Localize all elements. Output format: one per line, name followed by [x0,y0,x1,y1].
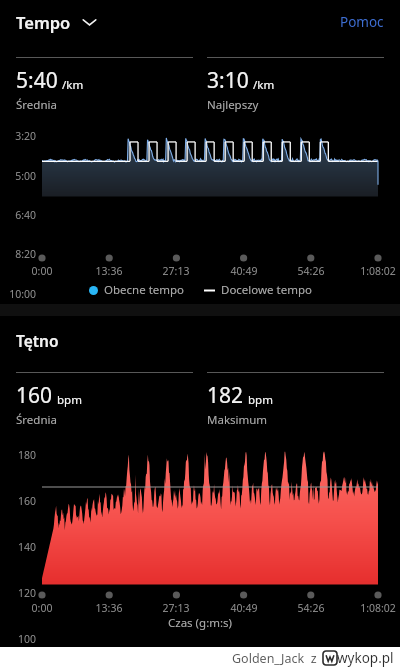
staticText: 1:08:02 [348,601,400,615]
staticText: 10:00 [0,287,36,301]
staticText: 40:49 [214,601,274,615]
staticText: Tętno [16,330,59,351]
button[interactable]: 182 [207,372,384,428]
staticText: 0:00 [12,601,72,615]
staticText: 5:40 [16,66,58,95]
button[interactable]: Pomoc [324,5,400,39]
staticText: 100 [0,632,36,646]
staticText: 3:10 [207,66,249,95]
staticText: Docelowe tempo [221,282,312,298]
staticText: 0:00 [12,264,72,278]
button[interactable]: 160 [16,372,193,428]
staticText: Golden_Jack z [232,650,320,667]
button[interactable]: 3:10 [207,57,384,113]
staticText: Maksimum [207,412,268,428]
staticText: Średnia [16,412,57,428]
staticText: 54:26 [281,601,341,615]
staticText: Pomoc [340,13,384,31]
staticText: 120 [0,586,36,600]
staticText: 6:40 [0,208,36,222]
staticText: /km [62,77,84,93]
button[interactable]: Tempo [16,11,103,33]
staticText: 1:08:02 [348,264,400,278]
staticText: 40:49 [214,264,274,278]
staticText: bpm [248,392,273,408]
staticText: wykop.pl [337,649,394,667]
staticText: 5:00 [0,169,36,183]
staticText: Średnia [16,97,57,113]
staticText: 160 [16,381,53,410]
staticText: 140 [0,540,36,554]
staticText: bpm [57,392,82,408]
staticText: Tempo [16,11,71,33]
staticText: 13:36 [79,264,139,278]
staticText: 3:20 [0,129,36,143]
staticText: 13:36 [79,601,139,615]
staticText: 180 [0,448,36,462]
staticText: 27:13 [146,264,206,278]
staticText: Czas (g:m:s) [168,615,233,631]
button[interactable]: 5:40 [16,57,193,113]
staticText: Obecne tempo [104,282,185,298]
staticText: 54:26 [281,264,341,278]
staticText: 8:20 [0,247,36,261]
staticText: Najlepszy [207,97,259,113]
staticText: 160 [0,494,36,508]
staticText: 182 [207,381,244,410]
staticText: /km [253,77,275,93]
staticText: 27:13 [146,601,206,615]
